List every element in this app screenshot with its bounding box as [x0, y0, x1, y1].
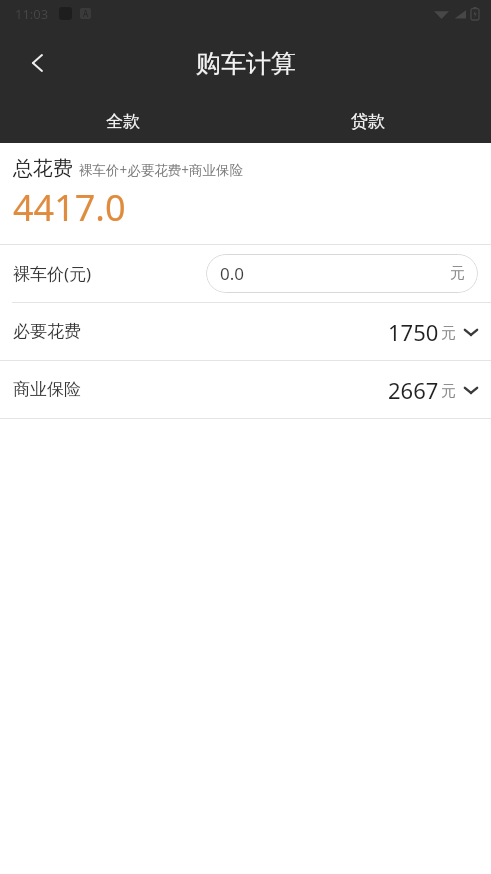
- button[interactable]: 必要花费: [0, 303, 491, 360]
- staticText: 1750: [388, 317, 439, 347]
- staticText: 裸车价(元): [13, 262, 92, 285]
- staticText: 全款: [106, 111, 140, 132]
- staticText: A: [83, 8, 89, 19]
- staticText: 元: [441, 382, 456, 401]
- staticText: 0.0: [220, 262, 245, 285]
- staticText: 必要花费: [13, 321, 81, 342]
- button[interactable]: 0.0: [206, 254, 478, 293]
- button[interactable]: 全款: [0, 99, 245, 143]
- staticText: 总花费: [13, 156, 73, 181]
- staticText: 商业保险: [13, 379, 81, 400]
- staticText: 裸车价+必要花费+商业保险: [79, 161, 243, 179]
- staticText: 2667: [388, 375, 439, 405]
- button[interactable]: 商业保险: [0, 361, 491, 418]
- staticText: 4417.0: [13, 183, 126, 232]
- other: Expand: [462, 323, 480, 341]
- staticText: 11:03: [15, 5, 49, 23]
- staticText: 元: [441, 324, 456, 343]
- other: Expand: [462, 381, 480, 399]
- staticText: 购车计算: [196, 48, 296, 79]
- button[interactable]: Back: [14, 39, 62, 87]
- button[interactable]: 贷款: [245, 99, 491, 143]
- staticText: 贷款: [351, 111, 385, 132]
- staticText: 元: [450, 264, 465, 283]
